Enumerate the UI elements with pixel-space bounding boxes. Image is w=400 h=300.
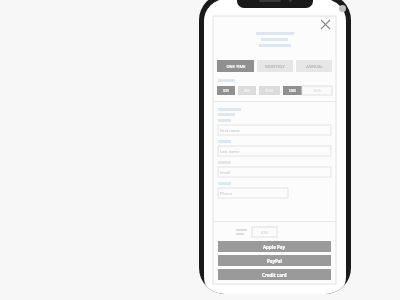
staticText: ANNUAL: [306, 64, 323, 69]
button[interactable]: ONE TIME: [217, 60, 254, 72]
button[interactable]: Last name: [218, 146, 331, 156]
staticText: USD: [289, 88, 297, 93]
button[interactable]: USD: [283, 86, 302, 95]
button[interactable]: Apple Pay: [218, 241, 331, 252]
staticText: $25: [223, 88, 230, 93]
button[interactable]: $25: [302, 86, 332, 95]
button[interactable]: $50: [238, 86, 256, 95]
staticText: Credit card: [262, 272, 287, 278]
staticText: $100: [265, 88, 274, 93]
staticText: Phone: [220, 191, 233, 196]
button[interactable]: ANNUAL: [296, 60, 332, 72]
button[interactable]: Close: [320, 19, 331, 30]
staticText: PayPal: [267, 258, 282, 264]
button[interactable]: Email: [218, 167, 331, 177]
button[interactable]: MONTHLY: [257, 60, 293, 72]
button[interactable]: Phone: [218, 188, 288, 198]
staticText: $50: [244, 88, 251, 93]
button[interactable]: $100: [259, 86, 280, 95]
button[interactable]: Options: [339, 5, 346, 12]
staticText: First name: [220, 128, 240, 133]
staticText: $25: [314, 88, 321, 93]
staticText: MONTHLY: [265, 64, 285, 69]
staticText: ONE TIME: [226, 64, 246, 69]
staticText: Last name: [220, 149, 240, 154]
staticText: $25: [261, 230, 268, 235]
staticText: Email: [220, 170, 231, 175]
button[interactable]: First name: [218, 125, 331, 135]
button[interactable]: $25: [217, 86, 235, 95]
button[interactable]: $25: [252, 227, 277, 237]
staticText: Apple Pay: [263, 244, 286, 250]
button[interactable]: Credit card: [218, 269, 331, 280]
button[interactable]: PayPal: [218, 255, 331, 266]
